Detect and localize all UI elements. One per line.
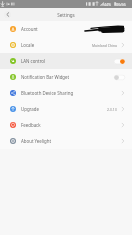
staticText: Bluetooth Device Sharing (21, 90, 74, 96)
button[interactable]: Turn on (114, 75, 125, 80)
staticText: LAN control (21, 58, 46, 64)
button[interactable]: Bluetooth Device Sharing (0, 85, 132, 101)
staticText: Upgrade (21, 106, 39, 112)
staticText: Mainland China (92, 43, 117, 48)
staticText: Notification Bar Widget (21, 74, 70, 80)
staticText: 2.3.13 (107, 107, 117, 112)
button[interactable]: Account (0, 21, 132, 37)
button[interactable]: Locale (0, 37, 132, 53)
staticText: Locale (21, 42, 35, 48)
staticText: About Yeelight (21, 138, 52, 144)
staticText: 44% (104, 2, 112, 7)
button[interactable]: About Yeelight (0, 133, 132, 149)
button[interactable]: Notification Bar Widget (0, 69, 132, 85)
button[interactable]: Feedback (0, 117, 132, 133)
button[interactable]: Back (4, 11, 11, 18)
staticText: Settings (57, 12, 75, 18)
button[interactable]: LAN control (0, 53, 132, 69)
staticText: Feedback (21, 122, 41, 128)
button[interactable]: Upgrade (0, 101, 132, 117)
button[interactable]: Turn off (114, 59, 125, 64)
staticText: 06:56 (116, 2, 126, 7)
staticText: Account (21, 26, 38, 32)
